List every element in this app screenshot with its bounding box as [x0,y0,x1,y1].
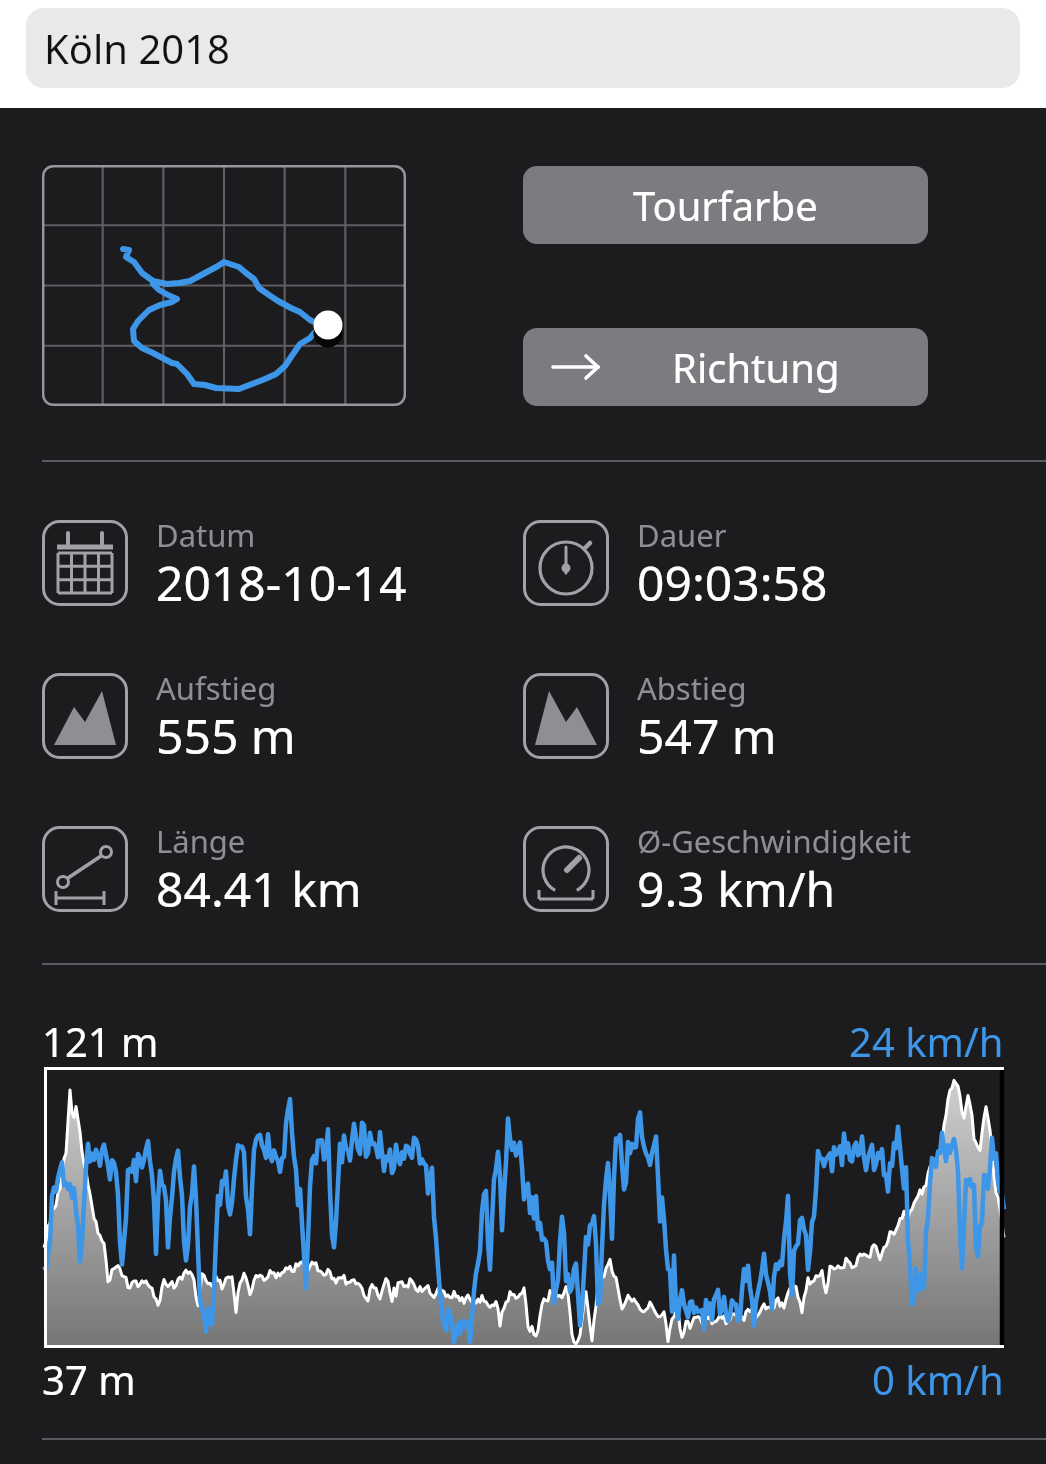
staticText: Länge [156,820,246,862]
staticText: 37 m [42,1352,136,1406]
staticText: 2018-10-14 [156,550,407,615]
staticText: Richtung [672,340,840,394]
button[interactable]: Länge [42,826,502,926]
button[interactable]: Abstieg [523,673,983,773]
staticText: Tourfarbe [633,178,818,232]
staticText: 121 m [42,1014,159,1068]
button[interactable]: Datum [42,520,502,620]
staticText: 0 km/h [872,1352,1004,1406]
button[interactable]: Aufstieg [42,673,502,773]
staticText: Ø-Geschwindigkeit [637,820,912,862]
button[interactable]: Richtung [523,328,928,406]
staticText: Köln 2018 [44,21,230,75]
staticText: Datum [156,514,256,556]
staticText: 09:03:58 [637,550,828,615]
button[interactable] [42,165,406,406]
button[interactable]: Ø-Geschwindigkeit [523,826,983,926]
staticText: Dauer [637,514,727,556]
staticText: Aufstieg [156,667,277,709]
staticText: 9.3 km/h [637,856,836,921]
staticText: 555 m [156,703,296,768]
staticText: Abstieg [637,667,747,709]
staticText: 547 m [637,703,777,768]
staticText: 24 km/h [849,1014,1004,1068]
button[interactable]: Köln 2018 [26,8,1020,88]
staticText: 84.41 km [156,856,362,921]
button[interactable]: Tourfarbe [523,166,928,244]
button[interactable]: Dauer [523,520,983,620]
